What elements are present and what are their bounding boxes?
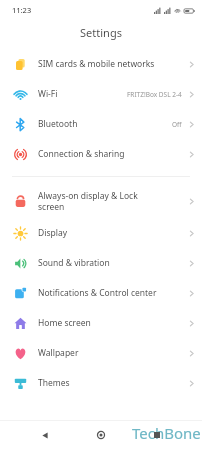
staticText: Settings bbox=[80, 25, 122, 40]
staticText: Sound & vibration bbox=[38, 257, 186, 269]
staticText: 11:23 bbox=[12, 5, 32, 15]
staticText: Connection & sharing bbox=[38, 148, 186, 160]
staticText: Wallpaper bbox=[38, 347, 186, 359]
button[interactable]: Display bbox=[0, 218, 202, 248]
button[interactable]: Home screen bbox=[0, 308, 202, 338]
button[interactable]: Connection & sharing bbox=[0, 139, 202, 169]
button[interactable]: Always-on display & Lock screen bbox=[0, 184, 202, 218]
staticText: Display bbox=[38, 227, 186, 239]
staticText: Wi-Fi bbox=[38, 88, 127, 100]
button[interactable]: Themes bbox=[0, 368, 202, 398]
staticText: Always-on display & Lock screen bbox=[38, 190, 186, 212]
staticText: Bluetooth bbox=[38, 118, 172, 130]
staticText: TechBone bbox=[132, 423, 201, 443]
staticText: FRITZ!Box DSL 2-4 bbox=[127, 90, 182, 99]
button[interactable]: Sound & vibration bbox=[0, 248, 202, 278]
button[interactable]: SIM cards & mobile networks bbox=[0, 49, 202, 79]
staticText: Home screen bbox=[38, 317, 186, 329]
button[interactable]: Notifications & Control center bbox=[0, 278, 202, 308]
button[interactable]: Wi-Fi bbox=[0, 79, 202, 109]
button[interactable]: Home bbox=[90, 424, 112, 446]
staticText: Notifications & Control center bbox=[38, 287, 186, 299]
staticText: Themes bbox=[38, 377, 186, 389]
staticText: Off bbox=[172, 120, 182, 129]
button[interactable]: Back bbox=[34, 424, 56, 446]
button[interactable]: Recent apps bbox=[146, 424, 168, 446]
staticText: SIM cards & mobile networks bbox=[38, 58, 186, 70]
button[interactable]: Bluetooth bbox=[0, 109, 202, 139]
button[interactable]: Wallpaper bbox=[0, 338, 202, 368]
